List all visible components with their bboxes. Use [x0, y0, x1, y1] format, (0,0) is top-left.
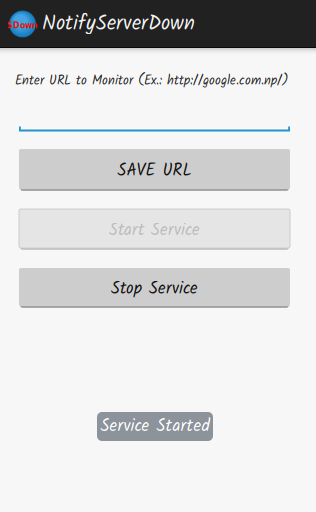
button[interactable]: URL to monitor	[19, 101, 290, 131]
staticText: Stop Service	[111, 276, 198, 302]
staticText: SAVE URL	[117, 158, 191, 184]
button[interactable]: Stop Service	[19, 266, 290, 308]
button[interactable]: SAVE URL	[19, 147, 290, 191]
button[interactable]: Start Service	[19, 207, 290, 250]
staticText: Service Started	[100, 413, 209, 440]
staticText: NotifyServerDown	[42, 8, 195, 40]
staticText: Enter URL to Monitor (Ex.: http://google…	[15, 71, 288, 91]
staticText: SDown	[7, 21, 38, 30]
staticText: Start Service	[109, 217, 200, 244]
